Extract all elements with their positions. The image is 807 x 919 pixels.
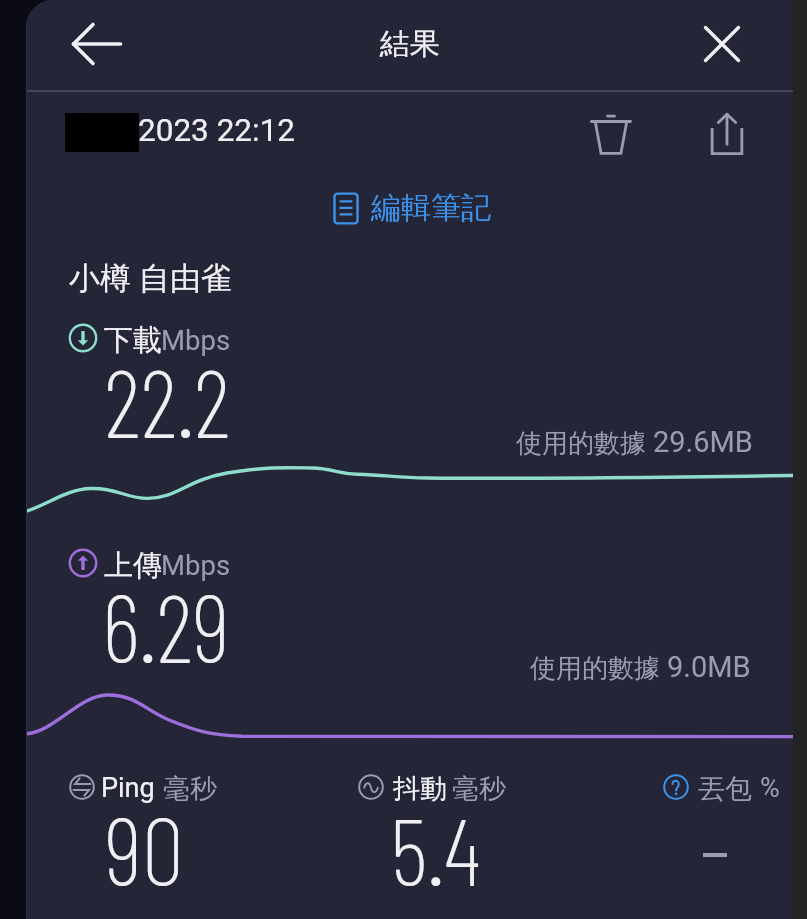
staticText: 使用的數據: [530, 652, 660, 685]
button[interactable]: Delete: [579, 101, 643, 165]
staticText: 5.4: [390, 791, 481, 905]
staticText: 22.2: [104, 343, 231, 457]
staticText: 毫秒: [452, 772, 506, 806]
staticText: 6.29: [102, 568, 230, 682]
staticText: 結果: [380, 25, 440, 63]
staticText: 29.6MB: [653, 425, 753, 459]
staticText: 90: [105, 791, 184, 905]
staticText: 毫秒: [163, 772, 217, 806]
staticText: 編輯筆記: [371, 189, 491, 227]
staticText: 小樽 自由雀: [69, 259, 232, 298]
staticText: 使用的數據: [516, 427, 646, 460]
staticText: 2023 22:12: [138, 112, 296, 149]
button[interactable]: Share: [695, 101, 759, 165]
button[interactable]: 編輯筆記: [27, 180, 793, 236]
button[interactable]: Back: [69, 16, 125, 72]
button[interactable]: Close: [700, 22, 744, 66]
staticText: 9.0MB: [667, 650, 751, 684]
staticText: 下載: [104, 322, 162, 359]
staticText: 丟包: [698, 772, 752, 806]
staticText: %: [760, 772, 780, 804]
staticText: 抖動: [393, 772, 447, 806]
staticText: Mbps: [161, 549, 231, 581]
staticText: 上傳: [104, 547, 162, 584]
staticText: Mbps: [161, 324, 231, 356]
staticText: Ping: [101, 772, 155, 804]
